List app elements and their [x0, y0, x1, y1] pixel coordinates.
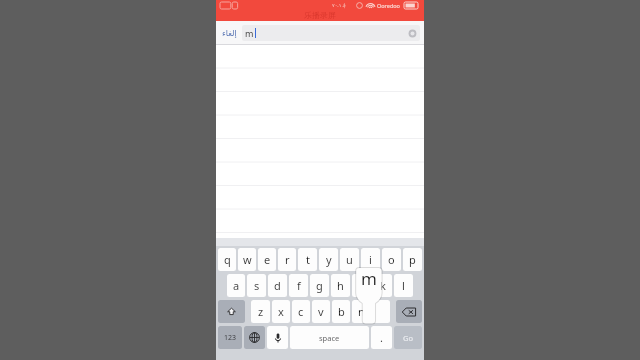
button[interactable]: i: [361, 248, 380, 271]
staticText: n: [358, 304, 365, 319]
staticText: t: [306, 252, 310, 267]
button[interactable]: u: [340, 248, 359, 271]
staticText: k: [380, 278, 386, 293]
button[interactable]: space: [290, 326, 369, 349]
button[interactable]: n: [352, 300, 370, 323]
staticText: l: [402, 278, 405, 293]
staticText: p: [409, 252, 416, 267]
staticText: x: [278, 304, 284, 319]
button[interactable]: .: [371, 326, 392, 349]
staticText: إلغاء: [222, 29, 237, 38]
button[interactable]: f: [289, 274, 308, 297]
button[interactable]: Backspace: [396, 300, 422, 323]
button[interactable]: h: [331, 274, 350, 297]
button[interactable]: p: [403, 248, 422, 271]
button[interactable]: Go: [394, 326, 422, 349]
button[interactable]: t: [298, 248, 317, 271]
button[interactable]: g: [310, 274, 329, 297]
staticText: Go: [403, 333, 413, 343]
staticText: z: [258, 304, 264, 319]
button[interactable]: Shift: [218, 300, 245, 323]
staticText: i: [369, 252, 372, 267]
button[interactable]: e: [258, 248, 276, 271]
button[interactable]: w: [238, 248, 256, 271]
button[interactable]: 123: [218, 326, 242, 349]
button[interactable]: v: [312, 300, 330, 323]
staticText: h: [337, 278, 344, 293]
staticText: Ooredoo: [377, 2, 400, 9]
staticText: 123: [224, 333, 237, 343]
staticText: q: [224, 252, 231, 267]
button[interactable]: d: [268, 274, 287, 297]
staticText: r: [285, 252, 290, 267]
staticText: g: [316, 278, 323, 293]
staticText: u: [346, 252, 353, 267]
button[interactable]: Dictate: [267, 326, 288, 349]
button[interactable]: y: [319, 248, 338, 271]
button[interactable]: s: [247, 274, 266, 297]
staticText: s: [254, 278, 260, 293]
button[interactable]: [372, 300, 390, 323]
button[interactable]: o: [382, 248, 401, 271]
button[interactable]: a: [227, 274, 245, 297]
button[interactable]: z: [251, 300, 270, 323]
staticText: b: [338, 304, 345, 319]
button[interactable]: Clear text: [408, 29, 417, 38]
button[interactable]: إلغاء: [220, 26, 239, 41]
button[interactable]: q: [218, 248, 236, 271]
button[interactable]: b: [332, 300, 350, 323]
staticText: ؋ ٧٠.١: [332, 2, 346, 9]
staticText: a: [233, 278, 240, 293]
button[interactable]: Change keyboard language: [244, 326, 265, 349]
staticText: m: [361, 267, 377, 290]
button[interactable]: c: [292, 300, 310, 323]
staticText: f: [297, 278, 301, 293]
button[interactable]: m: [242, 25, 420, 41]
button[interactable]: l: [394, 274, 413, 297]
staticText: m: [245, 27, 254, 39]
staticText: c: [298, 304, 304, 319]
button[interactable]: j: [352, 274, 371, 297]
staticText: .: [380, 330, 383, 345]
staticText: space: [319, 333, 340, 343]
staticText: y: [326, 252, 332, 267]
staticText: o: [388, 252, 395, 267]
button[interactable]: r: [278, 248, 296, 271]
button[interactable]: k: [373, 274, 392, 297]
staticText: 乐播录屏: [304, 10, 336, 20]
button[interactable]: x: [272, 300, 290, 323]
staticText: v: [318, 304, 324, 319]
staticText: j: [360, 278, 363, 293]
staticText: w: [243, 252, 252, 267]
staticText: e: [264, 252, 271, 267]
staticText: d: [274, 278, 281, 293]
